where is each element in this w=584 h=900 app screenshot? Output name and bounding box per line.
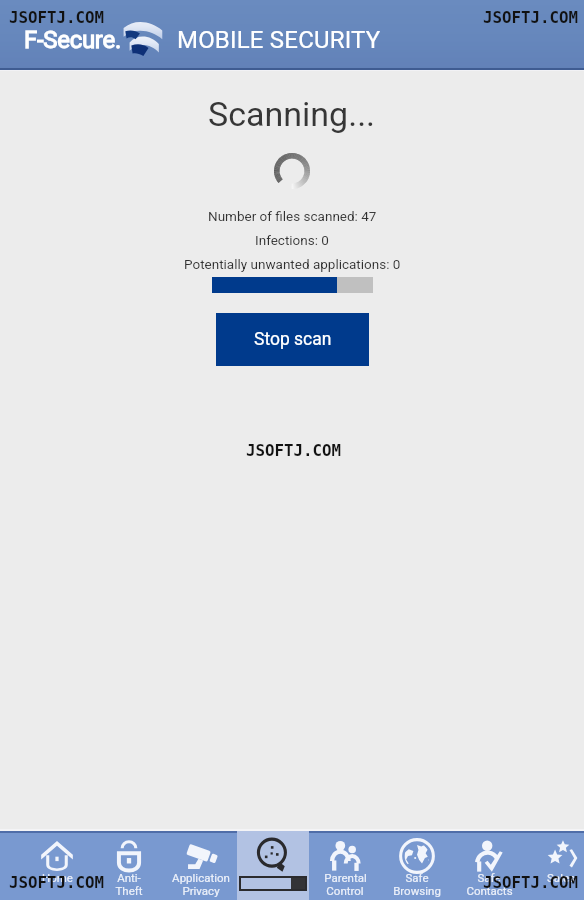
staticText: JSOFTJ.COM — [9, 8, 105, 26]
staticText: Safe — [477, 871, 501, 884]
button[interactable]: Safe Browsing — [381, 831, 453, 900]
staticText: Parental — [324, 871, 367, 884]
staticText: Number of files scanned: 47 — [208, 208, 377, 224]
staticText: Stop scan — [254, 329, 332, 350]
staticText: Control — [326, 884, 364, 897]
staticText: Scanning... — [208, 94, 376, 134]
staticText: F-Secure. — [24, 26, 121, 54]
staticText: Infections: 0 — [255, 232, 329, 248]
staticText: Contacts — [466, 884, 513, 897]
staticText: Anti- — [117, 871, 141, 884]
staticText: Application — [172, 871, 230, 884]
button[interactable]: Parental Control — [309, 831, 381, 900]
staticText: Theft — [115, 884, 143, 897]
button[interactable]: Virus scan — [237, 831, 309, 900]
staticText: JSOFTJ.COM — [483, 8, 579, 26]
button[interactable]: Stop scan — [216, 313, 369, 366]
staticText: JSOFTJ.COM — [9, 873, 105, 891]
staticText: Potentially unwanted applications: 0 — [184, 256, 401, 272]
button[interactable]: Safe Contacts — [453, 831, 525, 900]
staticText: Privacy — [182, 884, 220, 897]
staticText: JSOFTJ.COM — [246, 441, 342, 459]
staticText: Home — [42, 871, 73, 884]
button[interactable]: Home — [21, 831, 93, 900]
staticText: Browsing — [393, 884, 441, 897]
staticText: MOBILE SECURITY — [177, 26, 381, 54]
button[interactable]: Sales — [525, 831, 584, 900]
staticText: JSOFTJ.COM — [483, 873, 579, 891]
staticText: Safe — [405, 871, 429, 884]
staticText: Sales — [547, 871, 575, 884]
button[interactable]: Application Privacy — [165, 831, 237, 900]
button[interactable]: Anti-Theft — [93, 831, 165, 900]
